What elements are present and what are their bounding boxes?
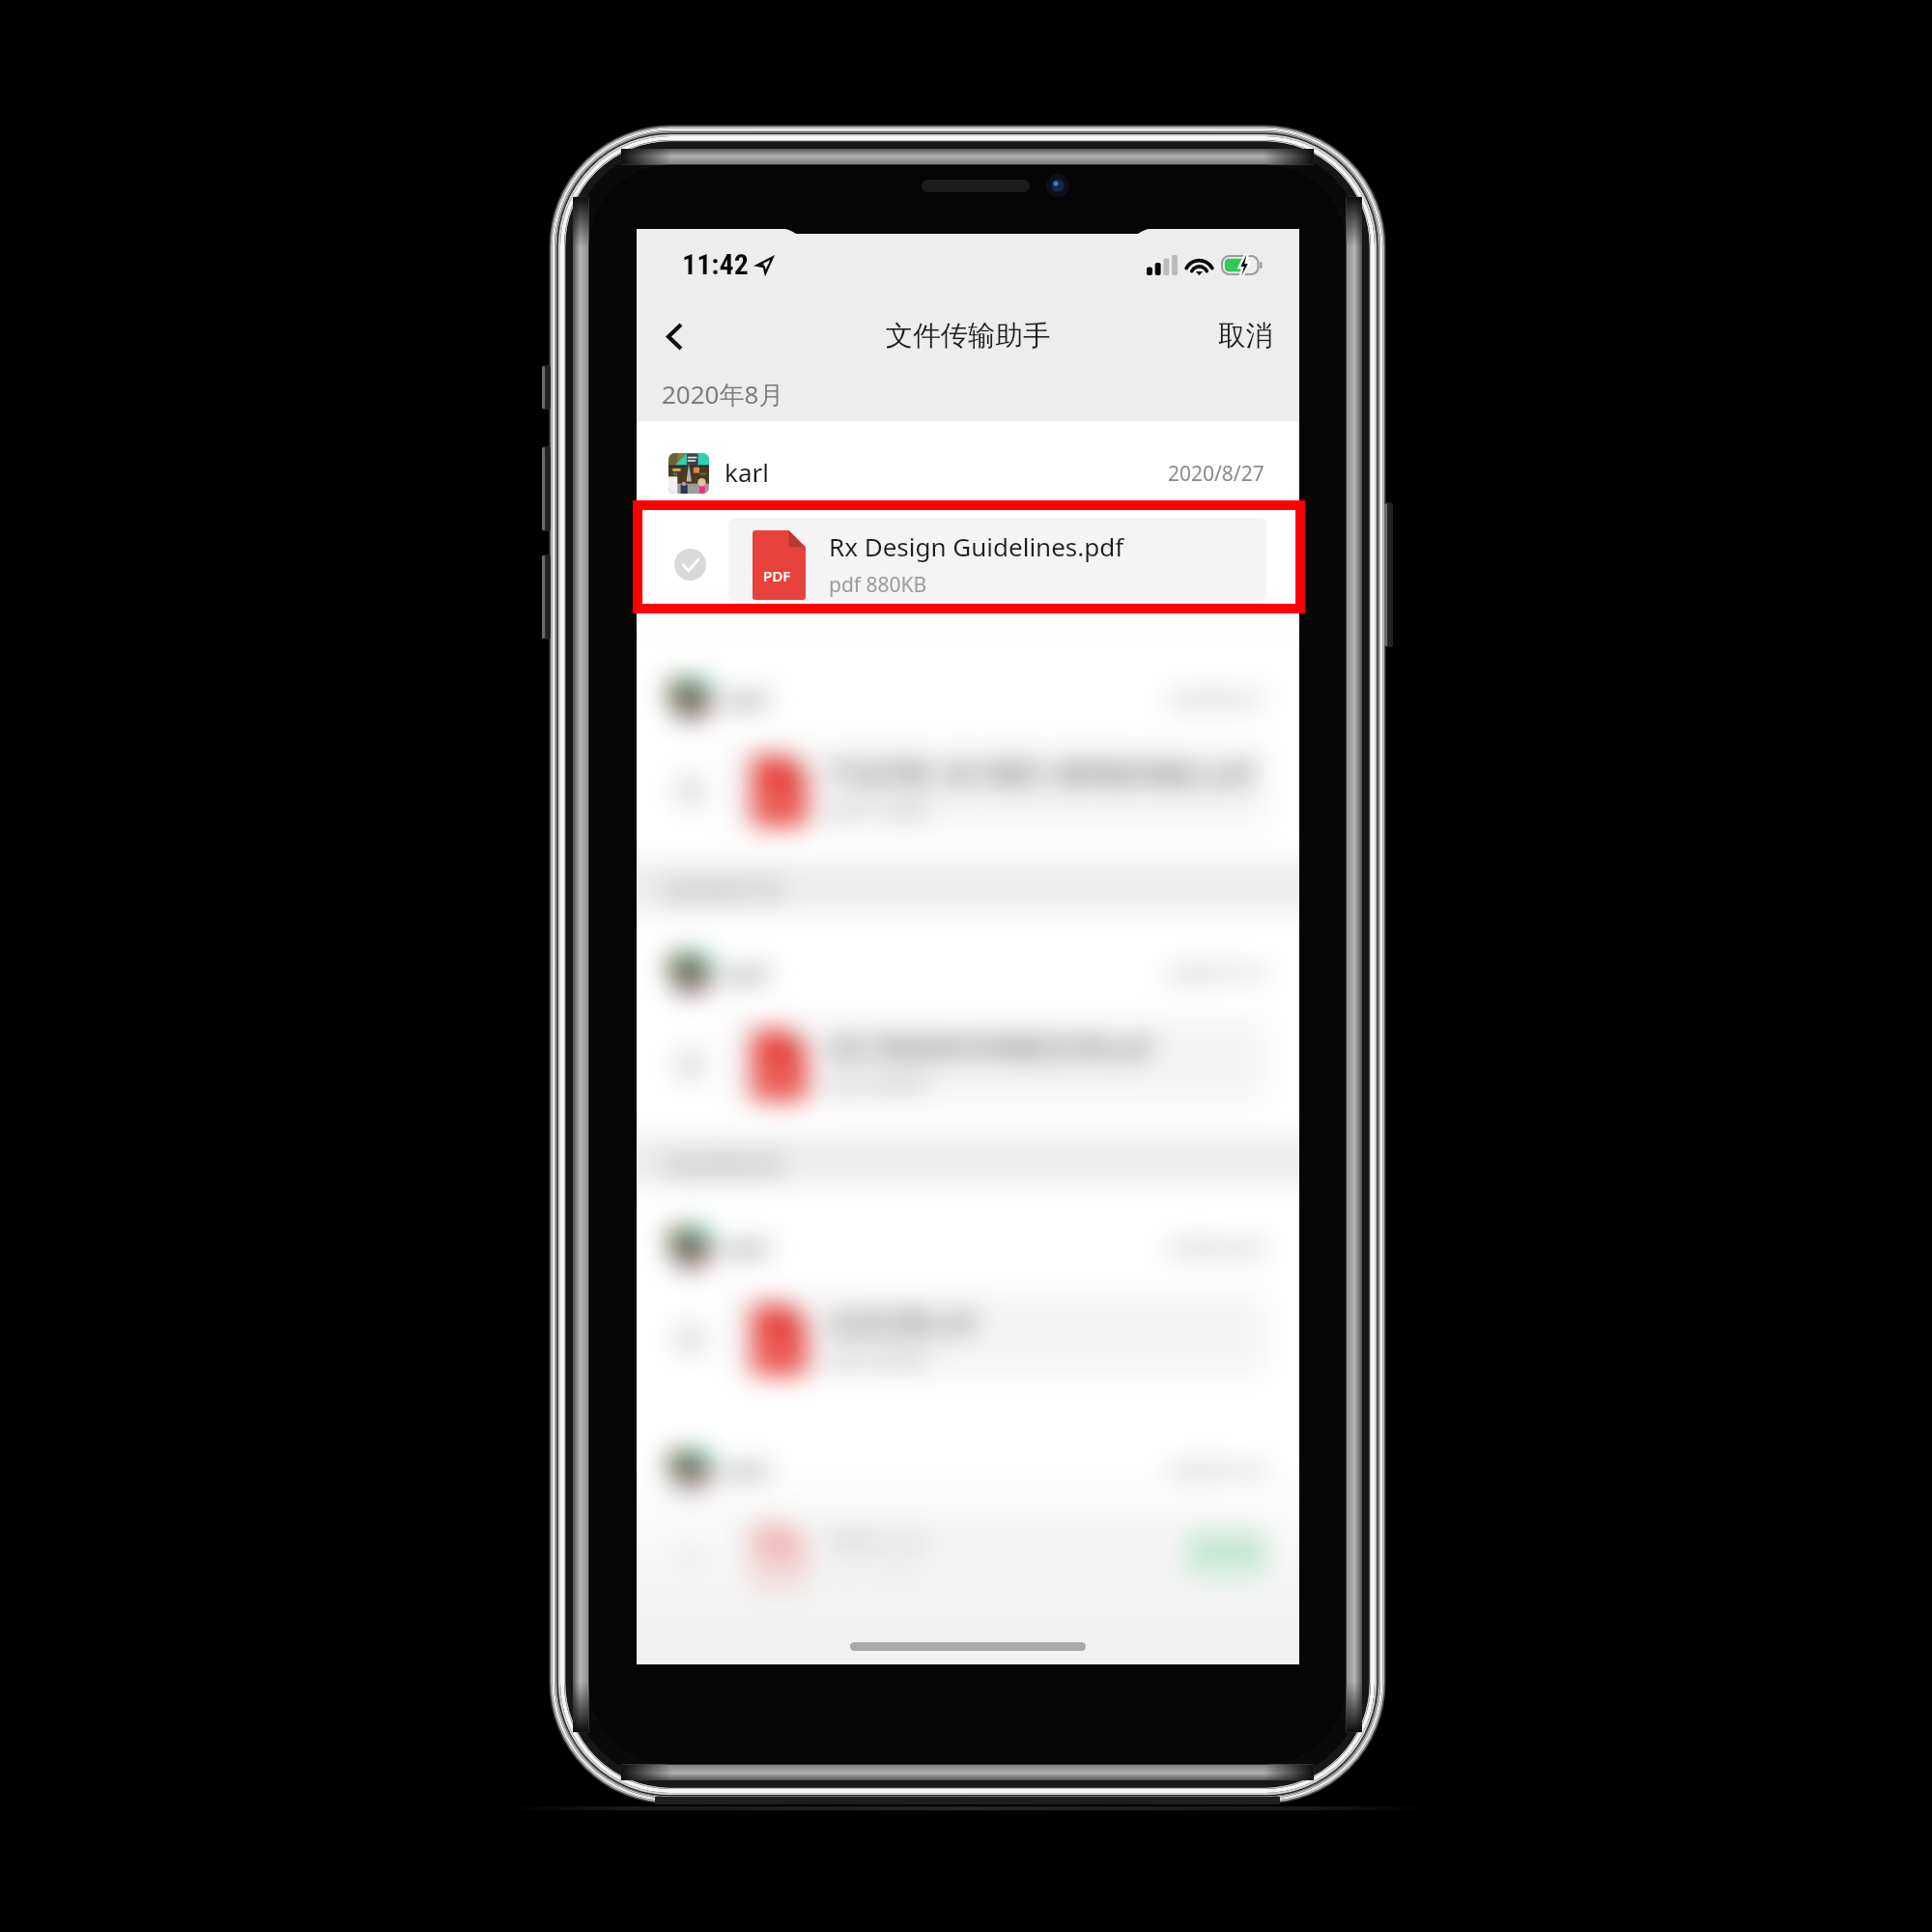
- button[interactable]: Select file: [637, 726, 1299, 838]
- button[interactable]: Select file: [674, 549, 706, 581]
- button[interactable]: 打开: [1189, 1539, 1264, 1581]
- staticText: 文件传输助手: [637, 319, 1299, 354]
- staticText: karl: [724, 1453, 769, 1487]
- button[interactable]: Select file: [637, 1498, 1299, 1610]
- staticText: 2020年6月: [662, 1148, 784, 1182]
- staticText: 取消: [1218, 319, 1273, 354]
- staticText: 设计系统组件库规范文档.pdf: [829, 1030, 1299, 1065]
- button[interactable]: Select file: [637, 1001, 1299, 1113]
- staticText: karl: [724, 955, 769, 989]
- button[interactable]: Select file: [637, 500, 1299, 612]
- staticText: pdf 880KB: [829, 571, 927, 599]
- staticText: karl: [724, 1230, 769, 1264]
- staticText: 2020年8月: [662, 377, 784, 412]
- staticText: PDF: [763, 1066, 791, 1087]
- staticText: pdf 1.2MB: [829, 797, 926, 825]
- button[interactable]: karl: [637, 1196, 1299, 1275]
- staticText: 2020/8/27: [1168, 460, 1264, 488]
- staticText: 打开: [1206, 1547, 1248, 1574]
- button[interactable]: Back: [642, 294, 706, 379]
- staticText: PDF: [763, 1341, 791, 1361]
- staticText: pdf 640KB: [829, 1071, 927, 1099]
- button[interactable]: karl: [637, 1419, 1299, 1498]
- button[interactable]: karl: [637, 647, 1299, 726]
- button[interactable]: Select file: [637, 1275, 1299, 1387]
- staticText: PDF: [763, 566, 791, 586]
- staticText: PDF: [763, 792, 791, 812]
- staticText: 产品手册 设计规范 最终版本确认.pdf: [829, 755, 1299, 790]
- staticText: 2020年7月: [662, 873, 784, 908]
- staticText: Rx Design Guidelines.pdf: [829, 529, 1299, 563]
- staticText: 会议纪要.pdf: [829, 1304, 1299, 1339]
- button[interactable]: 取消: [1218, 294, 1273, 379]
- staticText: pdf 320KB: [829, 1346, 927, 1374]
- staticText: 11:42: [682, 247, 749, 281]
- button[interactable]: karl: [637, 922, 1299, 1001]
- button[interactable]: karl: [637, 421, 1299, 500]
- staticText: 2020/8/27: [1168, 686, 1264, 714]
- staticText: PDF: [763, 1564, 791, 1584]
- staticText: karl: [724, 681, 769, 715]
- staticText: karl: [724, 455, 769, 489]
